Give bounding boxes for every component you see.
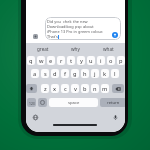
button[interactable]: great [26,44,59,54]
staticText: n [93,85,97,93]
staticText: c [64,85,67,93]
button[interactable]: y [77,56,85,65]
staticText: i [100,57,102,65]
staticText: v [74,85,77,93]
button[interactable]: Change keyboard [32,114,39,121]
staticText: the new [72,19,88,24]
staticText: h [83,70,87,78]
button[interactable]: f [61,69,69,78]
staticText: greem [78,29,90,34]
button[interactable]: Shift [26,84,37,93]
staticText: colour. [90,29,104,34]
staticText: psp [75,24,82,29]
staticText: 123 [29,101,35,105]
button[interactable]: e [47,56,55,65]
staticText: about [82,24,94,29]
staticText: x [53,85,57,93]
button[interactable]: Numbers [27,98,36,107]
button[interactable]: Backspace [112,84,124,93]
button[interactable]: l [111,69,119,78]
button[interactable]: Add attachment [33,34,38,39]
button[interactable]: t [67,56,75,65]
staticText: k [103,70,107,78]
staticText: great [37,46,49,52]
staticText: z [44,85,47,93]
staticText: g [73,70,77,78]
button[interactable]: r [57,56,65,65]
staticText: That's [47,34,58,39]
button[interactable]: g [71,69,79,78]
button[interactable]: s [41,69,49,78]
button[interactable]: n [91,84,99,93]
staticText: Did you [47,19,63,24]
staticText: chek [63,19,72,24]
button[interactable]: Did you [45,17,121,40]
staticText: u [89,57,93,65]
button[interactable]: p [117,56,125,65]
button[interactable]: i [97,56,105,65]
staticText: f [64,70,66,78]
staticText: space [68,100,80,106]
button[interactable]: Emoji [38,98,47,107]
button[interactable]: v [71,84,79,93]
staticText: iPhone 13 Pro in [47,29,78,34]
staticText: l [114,70,116,78]
staticText: p [119,57,123,65]
staticText: e [49,57,53,65]
button[interactable]: Dictate [112,114,119,121]
button[interactable]: Send [112,32,118,38]
staticText: why [71,46,80,52]
staticText: q [29,57,33,65]
staticText: a [33,70,37,78]
button[interactable]: q [27,56,35,65]
staticText: Downloadibog [47,24,75,29]
button[interactable]: x [51,84,59,93]
staticText: j [94,70,96,78]
button[interactable]: j [91,69,99,78]
button[interactable]: u [87,56,95,65]
staticText: r [60,57,63,65]
button[interactable]: what [92,44,125,54]
button[interactable]: o [107,56,115,65]
button[interactable]: m [101,84,109,93]
staticText: y [80,57,83,65]
button[interactable]: z [41,84,49,93]
staticText: w [39,57,44,65]
button[interactable]: c [61,84,69,93]
button[interactable]: why [59,44,92,54]
staticText: what [103,46,114,52]
button[interactable]: b [81,84,89,93]
staticText: m [102,85,108,93]
staticText: t [70,57,73,65]
staticText: d [53,70,57,78]
staticText: o [109,57,113,65]
button[interactable]: d [51,69,59,78]
button[interactable]: a [31,69,39,78]
staticText: return [107,100,120,106]
staticText: s [44,70,47,78]
button[interactable]: k [101,69,109,78]
button[interactable]: space [49,98,98,107]
button[interactable]: h [81,69,89,78]
staticText: b [83,85,87,93]
button[interactable]: w [37,56,45,65]
button[interactable]: return [100,98,125,107]
